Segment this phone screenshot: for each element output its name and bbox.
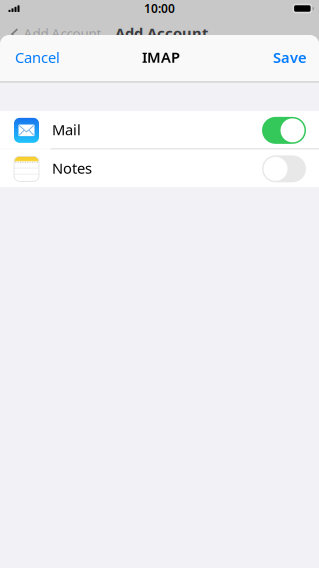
staticText: Mail	[52, 120, 81, 139]
staticText: Add Account	[115, 23, 208, 43]
staticText: 10:00	[144, 0, 175, 16]
button[interactable]: Notes	[0, 149, 319, 187]
staticText: Add Account	[23, 24, 101, 42]
button[interactable]: Cancel	[0, 34, 75, 80]
staticText: Save	[273, 48, 307, 67]
staticText: Notes	[52, 158, 92, 178]
staticText: Cancel	[15, 48, 60, 67]
staticText: IMAP	[142, 47, 180, 67]
button[interactable]: Mail	[0, 111, 319, 148]
button[interactable]: Save	[261, 34, 319, 80]
